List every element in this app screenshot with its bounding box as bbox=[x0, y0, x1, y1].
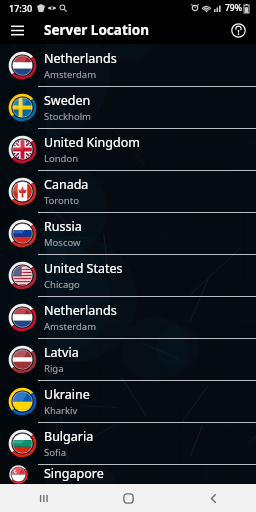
staticText: United States bbox=[44, 260, 123, 277]
staticText: Riga bbox=[44, 362, 64, 375]
staticText: Bulgaria bbox=[44, 428, 94, 445]
button[interactable]: United States bbox=[0, 255, 256, 296]
staticText: Amsterdam bbox=[44, 68, 97, 81]
staticText: Sofia bbox=[44, 446, 67, 459]
button[interactable]: Help bbox=[227, 19, 249, 41]
staticText: London bbox=[44, 152, 79, 165]
staticText: Stockholm bbox=[44, 110, 91, 123]
staticText: Kharkiv bbox=[44, 404, 78, 417]
staticText: Canada bbox=[44, 176, 89, 193]
button[interactable]: Sweden bbox=[0, 87, 256, 128]
staticText: Server Location bbox=[44, 21, 149, 39]
staticText: Toronto bbox=[44, 194, 79, 207]
staticText: Chicago bbox=[44, 278, 80, 291]
button[interactable]: Latvia bbox=[0, 339, 256, 380]
staticText: Singapore bbox=[44, 465, 104, 482]
staticText: Amsterdam bbox=[44, 320, 97, 333]
staticText: Netherlands bbox=[44, 302, 117, 319]
button[interactable]: Netherlands bbox=[0, 297, 256, 338]
staticText: Latvia bbox=[44, 344, 79, 361]
button[interactable]: Ukraine bbox=[0, 381, 256, 422]
button[interactable]: Netherlands bbox=[0, 44, 256, 86]
staticText: Ukraine bbox=[44, 386, 90, 403]
staticText: Netherlands bbox=[44, 50, 117, 67]
button[interactable]: Bulgaria bbox=[0, 423, 256, 464]
staticText: Moscow bbox=[44, 236, 81, 249]
button[interactable]: Singapore bbox=[0, 465, 256, 484]
button[interactable]: Russia bbox=[0, 213, 256, 254]
staticText: Russia bbox=[44, 218, 82, 235]
button[interactable]: Canada bbox=[0, 171, 256, 212]
staticText: United Kingdom bbox=[44, 134, 140, 151]
button[interactable]: Home bbox=[86, 484, 171, 512]
button[interactable]: Back bbox=[171, 484, 256, 512]
staticText: Sweden bbox=[44, 92, 91, 109]
button[interactable]: Open navigation menu bbox=[6, 19, 28, 41]
button[interactable]: Recent apps bbox=[0, 484, 86, 512]
staticText: 79% bbox=[225, 2, 242, 14]
button[interactable]: United Kingdom bbox=[0, 129, 256, 170]
staticText: 17:30 bbox=[9, 2, 33, 14]
